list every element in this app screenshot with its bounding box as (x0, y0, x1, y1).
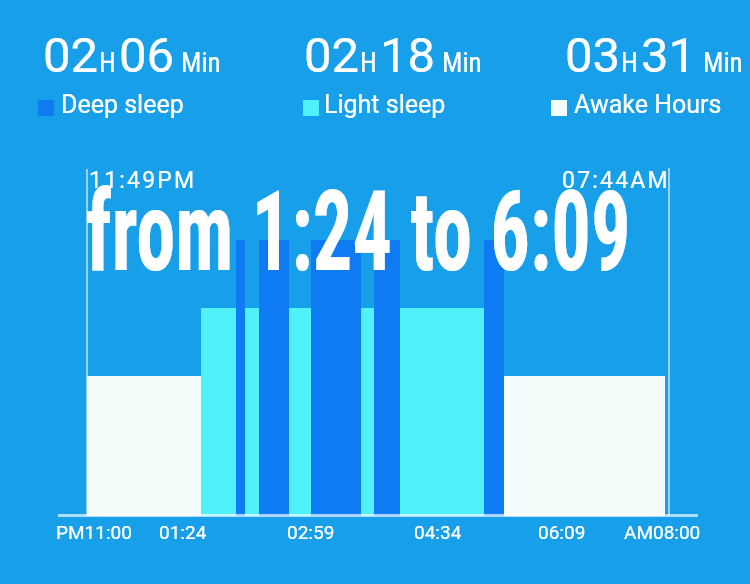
button[interactable] (551, 90, 721, 120)
staticText: 02 (304, 27, 360, 84)
staticText: PM11:00 (56, 521, 132, 543)
staticText: Deep sleep (61, 90, 184, 119)
staticText: 06 (119, 27, 175, 84)
button[interactable] (303, 90, 453, 120)
staticText: Awake Hours (574, 90, 722, 119)
staticText: 02:59 (287, 521, 335, 543)
staticText: H (360, 47, 377, 79)
staticText: 18 (380, 27, 436, 84)
staticText: H (99, 47, 116, 79)
staticText: from 1:24 to 6:09 (86, 166, 631, 297)
staticText: 31 (641, 27, 697, 84)
staticText: 06:09 (538, 521, 586, 543)
staticText: Min (703, 47, 743, 79)
staticText: 01:24 (159, 521, 207, 543)
staticText: Min (181, 47, 221, 79)
staticText: 11:49PM (89, 167, 197, 194)
button[interactable] (38, 90, 190, 120)
staticText: Light sleep (324, 90, 446, 119)
staticText: 07:44AM (562, 167, 670, 194)
staticText: 02 (43, 27, 99, 84)
staticText: Min (442, 47, 482, 79)
staticText: H (621, 47, 638, 79)
staticText: AM08:00 (624, 521, 701, 543)
staticText: 04:34 (414, 521, 462, 543)
staticText: 03 (565, 27, 621, 84)
